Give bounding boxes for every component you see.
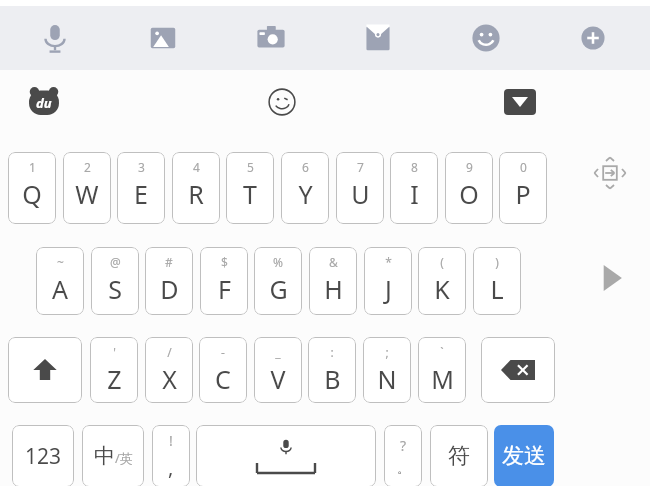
staticText: U <box>351 177 370 211</box>
button[interactable]: Comma <box>152 425 190 486</box>
button[interactable]: ` <box>418 337 466 403</box>
staticText: 6 <box>302 159 309 175</box>
staticText: $ <box>221 254 228 270</box>
button[interactable]: 0 <box>499 152 547 224</box>
staticText: ! <box>169 431 173 450</box>
staticText: : <box>330 344 334 360</box>
button[interactable]: Period <box>384 425 422 486</box>
staticText: 符 <box>448 442 470 470</box>
button[interactable]: ~ <box>36 247 84 315</box>
button[interactable]: Space <box>196 425 376 486</box>
button[interactable]: & <box>309 247 357 315</box>
button[interactable]: ' <box>90 337 138 403</box>
staticText: 。 <box>397 460 410 476</box>
staticText: E <box>134 177 148 211</box>
staticText: # <box>165 254 173 270</box>
staticText: H <box>324 272 343 306</box>
staticText: F <box>218 272 231 306</box>
staticText: 123 <box>25 442 62 471</box>
staticText: ; <box>385 344 389 360</box>
staticText: ? <box>400 436 407 455</box>
button[interactable]: Numbers <box>12 425 74 486</box>
button[interactable]: 2 <box>63 152 111 224</box>
staticText: 5 <box>247 159 254 175</box>
button[interactable]: Voice input <box>31 14 79 62</box>
button[interactable]: Shift <box>8 337 82 403</box>
button[interactable]: More <box>569 14 617 62</box>
button[interactable]: _ <box>254 337 302 403</box>
staticText: 0 <box>520 159 527 175</box>
button[interactable]: ; <box>363 337 411 403</box>
button[interactable]: Red packet <box>354 14 402 62</box>
staticText: 1 <box>29 159 36 175</box>
staticText: W <box>75 177 99 211</box>
staticText: B <box>324 362 341 396</box>
button[interactable]: - <box>199 337 247 403</box>
staticText: V <box>270 362 286 396</box>
staticText: L <box>490 272 504 306</box>
button[interactable]: ) <box>473 247 521 315</box>
staticText: 中 <box>94 443 115 469</box>
staticText: 8 <box>411 159 418 175</box>
staticText: P <box>515 177 531 211</box>
staticText: ) <box>495 254 499 270</box>
staticText: X <box>162 362 177 396</box>
staticText: ( <box>440 254 444 270</box>
staticText: M <box>431 362 454 396</box>
staticText: /英 <box>115 449 133 467</box>
staticText: A <box>52 272 68 306</box>
staticText: ~ <box>57 254 64 270</box>
button[interactable]: $ <box>200 247 248 315</box>
staticText: / <box>167 344 172 360</box>
button[interactable]: Baidu input settings <box>24 82 64 122</box>
staticText: N <box>377 362 397 396</box>
staticText: ` <box>440 344 444 360</box>
button[interactable]: Camera <box>247 14 295 62</box>
button[interactable]: 6 <box>281 152 329 224</box>
button[interactable]: 3 <box>117 152 165 224</box>
staticText: Z <box>107 362 122 396</box>
staticText: S <box>108 272 122 306</box>
button[interactable]: Emoji keyboard <box>262 82 302 122</box>
button[interactable]: 9 <box>445 152 493 224</box>
button[interactable]: Hide keyboard <box>500 82 540 122</box>
staticText: J <box>385 272 392 306</box>
staticText: Y <box>298 177 313 211</box>
staticText: 发送 <box>502 442 546 470</box>
button[interactable]: Move cursor <box>587 150 633 196</box>
staticText: 7 <box>357 159 364 175</box>
button[interactable]: 4 <box>172 152 220 224</box>
staticText: * <box>385 254 392 270</box>
button[interactable]: 发送 <box>494 425 554 486</box>
staticText: @ <box>110 254 121 270</box>
button[interactable]: Symbols <box>430 425 488 486</box>
button[interactable]: Next <box>592 258 632 298</box>
staticText: _ <box>275 344 281 360</box>
button[interactable]: % <box>254 247 302 315</box>
staticText: O <box>459 177 479 211</box>
staticText: % <box>273 254 283 270</box>
button[interactable]: ( <box>418 247 466 315</box>
button[interactable]: : <box>308 337 356 403</box>
staticText: ' <box>113 344 116 360</box>
button[interactable]: Backspace <box>481 337 555 403</box>
button[interactable]: # <box>145 247 193 315</box>
button[interactable]: @ <box>91 247 139 315</box>
button[interactable]: 5 <box>226 152 274 224</box>
button[interactable]: Emoji <box>462 14 510 62</box>
staticText: 3 <box>138 159 145 175</box>
staticText: 4 <box>193 159 200 175</box>
staticText: & <box>329 254 338 270</box>
button[interactable]: * <box>364 247 412 315</box>
button[interactable]: 1 <box>8 152 56 224</box>
button[interactable]: / <box>145 337 193 403</box>
staticText: G <box>269 272 288 306</box>
staticText: - <box>221 344 225 360</box>
staticText: 9 <box>466 159 473 175</box>
button[interactable]: 8 <box>390 152 438 224</box>
staticText: I <box>410 177 419 211</box>
button[interactable]: 7 <box>336 152 384 224</box>
button[interactable]: Gallery <box>139 14 187 62</box>
button[interactable]: Chinese English toggle <box>82 425 144 486</box>
staticText: 2 <box>84 159 91 175</box>
